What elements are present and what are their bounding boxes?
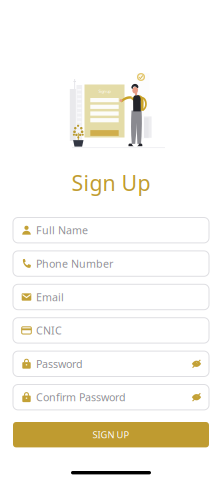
- button[interactable]: Email: [13, 284, 209, 310]
- button[interactable]: Confirm Password: [13, 384, 209, 410]
- staticText: Password: [36, 357, 83, 371]
- staticText: Phone Number: [36, 256, 113, 271]
- staticText: Sign up: [98, 88, 110, 94]
- staticText: Full Name: [36, 223, 88, 237]
- staticText: Confirm Password: [36, 390, 126, 404]
- staticText: CNIC: [36, 323, 62, 337]
- button[interactable]: Full Name: [13, 217, 209, 243]
- staticText: SIGN UP: [92, 428, 129, 441]
- staticText: Email: [36, 290, 64, 304]
- button[interactable]: SIGN UP: [13, 422, 209, 447]
- staticText: Sign Up: [71, 168, 150, 197]
- button[interactable]: Password: [13, 351, 209, 376]
- button[interactable]: Phone Number: [13, 251, 209, 276]
- button[interactable]: CNIC: [13, 318, 209, 343]
